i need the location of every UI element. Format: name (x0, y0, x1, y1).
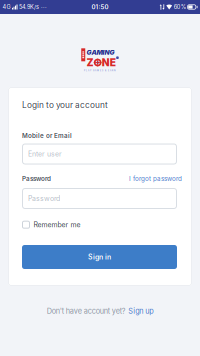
button[interactable]: Enter user (22, 143, 177, 164)
staticText: 4G (2, 4, 10, 10)
staticText: P L A Y G A M E S & E A R N (84, 69, 116, 72)
staticText: GAMING (86, 48, 114, 56)
staticText: Login to your account (22, 100, 108, 110)
button[interactable]: Sign up (128, 307, 153, 315)
staticText: 01:50 (91, 3, 108, 11)
button[interactable]: Sign in (22, 245, 177, 269)
button[interactable]: I forgot password (129, 175, 182, 183)
staticText: 60% (174, 4, 186, 10)
button[interactable]: Password (22, 188, 177, 209)
staticText: Password (28, 194, 60, 203)
staticText: Enter user (28, 150, 62, 158)
staticText: Sign in (88, 253, 111, 261)
staticText: Sign up (128, 307, 153, 315)
staticText: Mobile or Email (22, 132, 72, 140)
staticText: Z (86, 56, 93, 69)
staticText: 54.9K/s ··· (19, 4, 47, 10)
staticText: I forgot password (129, 175, 182, 183)
button[interactable]: Remember me (22, 220, 80, 229)
staticText: NE (102, 56, 116, 69)
staticText: Don't have account yet? (47, 307, 126, 315)
staticText: Remember me (33, 220, 80, 229)
staticText: Password (22, 175, 51, 183)
